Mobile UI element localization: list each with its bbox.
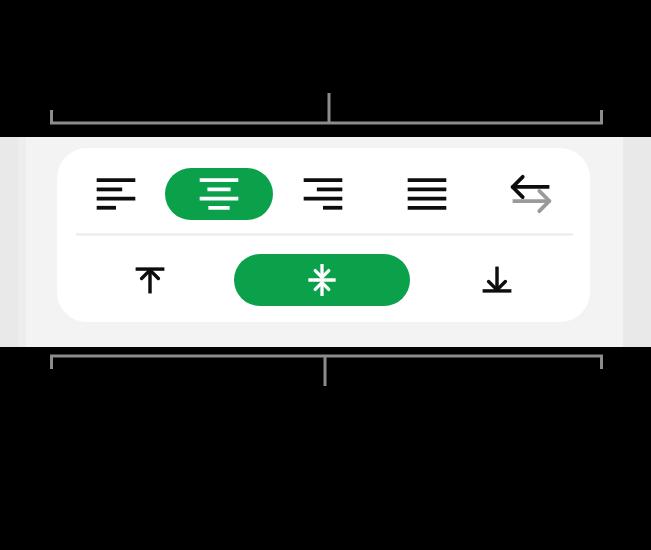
button[interactable]: Align center xyxy=(165,168,273,220)
button[interactable]: Align middle xyxy=(234,254,410,306)
button[interactable]: Text direction xyxy=(508,172,554,216)
button[interactable]: Align bottom xyxy=(477,259,517,301)
button[interactable]: Justify xyxy=(406,176,448,212)
button[interactable]: Align left xyxy=(95,176,137,212)
button[interactable]: Align right xyxy=(302,176,344,212)
button[interactable]: Align top xyxy=(130,259,170,301)
